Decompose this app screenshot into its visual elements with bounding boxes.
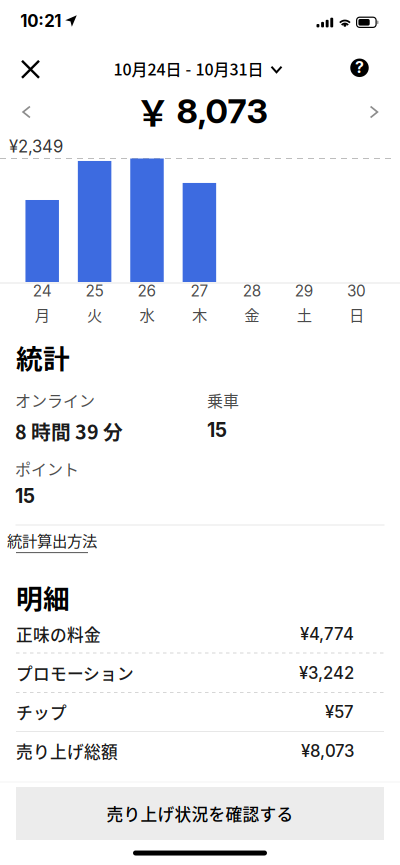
- button[interactable]: 10月24日 - 10月31日: [113, 46, 281, 90]
- staticText: ¥4,774: [300, 624, 354, 644]
- staticText: 25: [86, 282, 104, 300]
- staticText: 30: [347, 282, 366, 300]
- staticText: 10:21: [20, 11, 61, 31]
- staticText: ¥8,073: [301, 741, 354, 761]
- button[interactable]: Help: [337, 46, 381, 90]
- staticText: 8,073: [176, 90, 267, 131]
- staticText: 土: [297, 303, 312, 325]
- staticText: 火: [87, 303, 102, 325]
- staticText: 売り上げ状況を確認する: [106, 801, 293, 825]
- staticText: 26: [137, 282, 156, 300]
- staticText: 金: [244, 303, 259, 325]
- staticText: ¥2,349: [9, 136, 63, 157]
- staticText: オンライン: [15, 388, 95, 412]
- staticText: 15: [15, 484, 35, 508]
- staticText: 28: [243, 282, 261, 300]
- staticText: ¥57: [325, 702, 354, 722]
- staticText: 月: [35, 303, 50, 325]
- staticText: 明細: [16, 578, 70, 616]
- staticText: 24: [33, 282, 52, 300]
- staticText: 水: [139, 303, 154, 325]
- button[interactable]: 統計算出方法: [7, 524, 97, 558]
- staticText: ￥: [135, 86, 170, 137]
- button[interactable]: Previous week: [6, 92, 46, 132]
- staticText: 売り上げ総額: [16, 739, 118, 763]
- staticText: 正味の料金: [16, 622, 101, 646]
- staticText: 27: [190, 282, 208, 300]
- button[interactable]: Close: [7, 47, 53, 91]
- button[interactable]: Next week: [354, 92, 394, 132]
- staticText: ポイント: [15, 457, 79, 480]
- staticText: 統計算出方法: [7, 529, 97, 551]
- staticText: ¥3,242: [299, 663, 354, 683]
- staticText: プロモーション: [16, 661, 134, 685]
- staticText: 木: [192, 303, 207, 325]
- staticText: 10月24日 - 10月31日: [113, 57, 263, 80]
- staticText: チップ: [16, 700, 67, 724]
- staticText: 日: [349, 303, 364, 325]
- staticText: 統計: [16, 338, 70, 376]
- staticText: 乗車: [207, 388, 239, 412]
- staticText: 29: [295, 282, 314, 300]
- staticText: 8 時間 39 分: [15, 417, 123, 445]
- staticText: 15: [207, 418, 227, 442]
- button[interactable]: 売り上げ状況を確認する: [16, 787, 384, 840]
- staticText: ?: [355, 58, 364, 77]
